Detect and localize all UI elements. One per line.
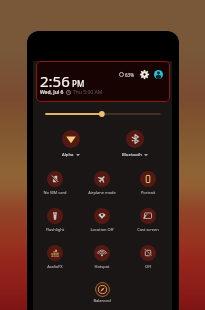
staticText: Hotspot (79, 264, 125, 269)
staticText: Thu 5:00 AM (73, 89, 103, 96)
staticText: 2:56 (40, 71, 70, 91)
staticText: Flashlight (32, 227, 78, 232)
staticText: Cast screen (125, 227, 171, 232)
staticText: No SIM card (32, 190, 78, 195)
staticText: Wed, Jul 6 (40, 89, 64, 96)
button[interactable]: Portrait (125, 171, 171, 195)
button[interactable]: Hotspot (79, 245, 125, 269)
staticText: Alpha (62, 152, 74, 158)
staticText: AudioFX (32, 264, 78, 269)
staticText: Location Off (79, 227, 125, 232)
staticText: PM (72, 78, 85, 89)
staticText: Airplane mode (79, 190, 125, 195)
button[interactable]: Settings (140, 70, 149, 79)
staticText: 63% (125, 72, 134, 78)
staticText: Bluetooth (122, 152, 142, 158)
button[interactable]: AudioFX (32, 245, 78, 269)
button[interactable]: Location Off (79, 208, 125, 232)
staticText: Portrait (125, 190, 171, 195)
button[interactable]: Brightness (46, 108, 160, 120)
staticText: Off (125, 264, 171, 269)
button[interactable]: User account (154, 70, 163, 79)
staticText: Balanced (83, 298, 121, 303)
button[interactable]: Cast screen (125, 208, 171, 232)
button[interactable]: Alpha (41, 130, 101, 158)
button[interactable]: Airplane mode (79, 171, 125, 195)
button[interactable]: Flashlight (32, 208, 78, 232)
button[interactable]: 2:56 (36, 61, 170, 102)
button[interactable]: Performance profile (95, 282, 110, 297)
button[interactable]: Off (125, 245, 171, 269)
button[interactable]: Bluetooth (105, 130, 165, 158)
button[interactable]: No SIM card (32, 171, 78, 195)
